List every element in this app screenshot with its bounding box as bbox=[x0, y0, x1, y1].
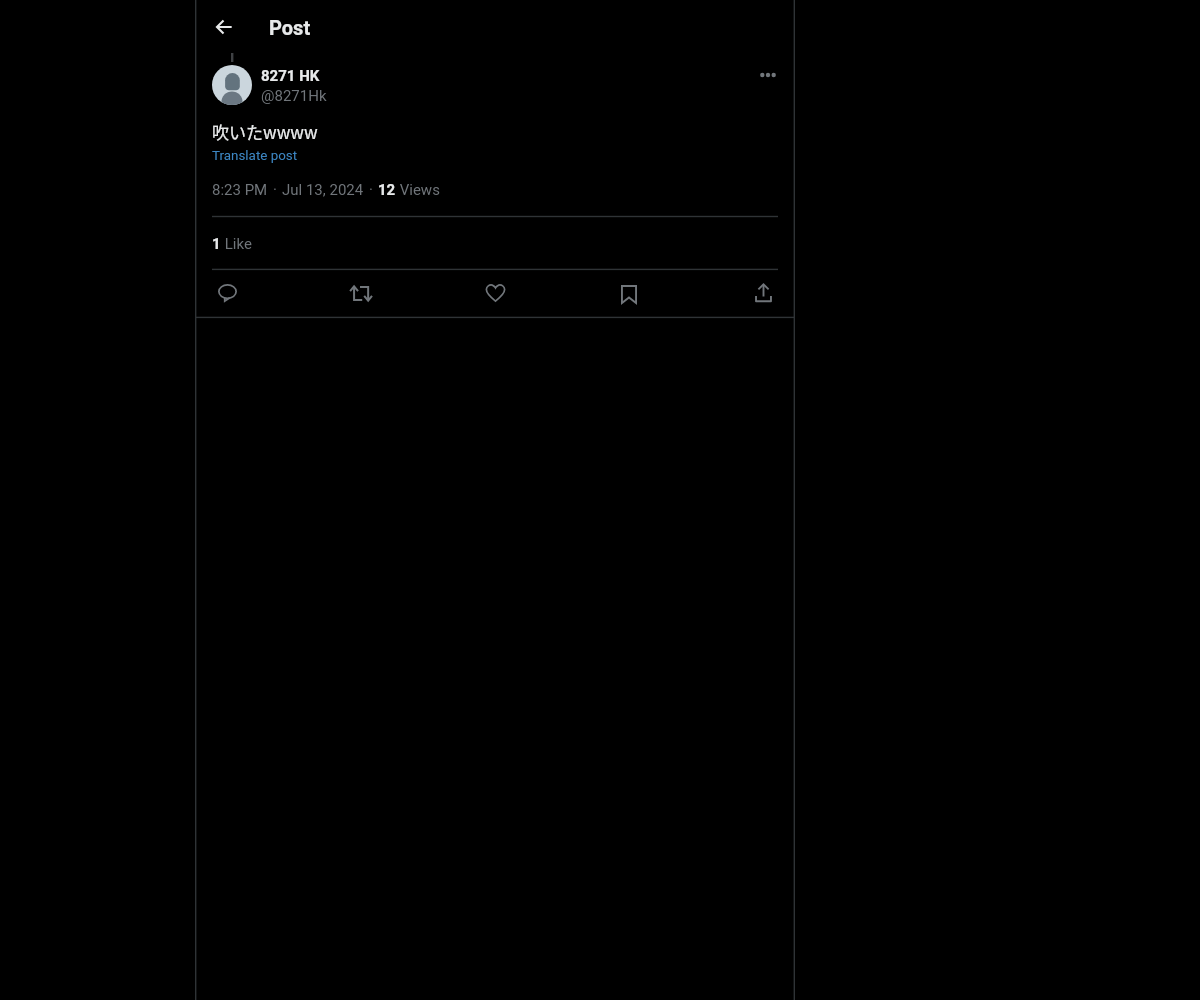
button[interactable]: Translate post bbox=[212, 148, 298, 164]
staticText: Translate post bbox=[212, 148, 298, 164]
staticText: Views bbox=[396, 181, 440, 199]
staticText: · bbox=[273, 181, 277, 199]
button[interactable]: More options bbox=[751, 58, 785, 92]
button[interactable]: Repost bbox=[344, 276, 378, 310]
staticText: Jul 13, 2024 bbox=[282, 181, 364, 199]
staticText: 1 bbox=[212, 235, 221, 253]
button[interactable]: Bookmark bbox=[612, 277, 646, 311]
staticText: 8271 HK bbox=[261, 67, 320, 85]
button[interactable]: 1 bbox=[212, 235, 252, 253]
staticText: 8:23 PM bbox=[212, 181, 268, 199]
staticText: · bbox=[369, 181, 373, 199]
staticText: Post bbox=[269, 16, 311, 39]
staticText: @8271Hk bbox=[261, 87, 327, 105]
staticText: 吹いたwwww bbox=[212, 119, 318, 144]
staticText: 12 bbox=[378, 181, 396, 199]
button[interactable]: Back bbox=[206, 9, 242, 45]
button[interactable]: Profile picture bbox=[212, 65, 252, 105]
button[interactable]: Like bbox=[478, 276, 512, 310]
staticText: Like bbox=[221, 235, 252, 253]
button[interactable]: Share bbox=[746, 276, 780, 310]
button[interactable]: Reply bbox=[210, 276, 244, 310]
